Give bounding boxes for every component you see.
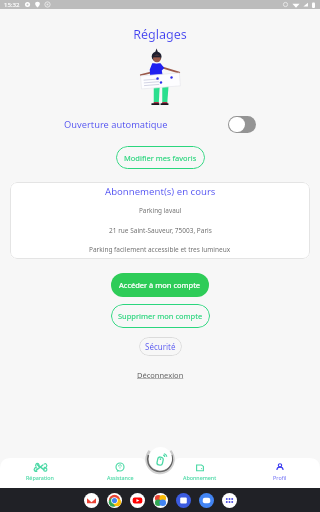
button[interactable]: Déconnexion [135, 368, 186, 382]
button[interactable]: Ouvrir la telecommande [149, 447, 172, 470]
button[interactable]: Accéder à mon compte [111, 273, 209, 297]
button[interactable]: Supprimer mon compte [111, 304, 210, 328]
button[interactable]: Profil [240, 457, 320, 487]
staticText: Abonnement [183, 474, 217, 481]
staticText: Accéder à mon compte [119, 280, 201, 290]
button[interactable]: Sécurité [139, 337, 182, 356]
button[interactable]: App 4 [176, 493, 191, 508]
button[interactable]: Réparation [0, 457, 80, 487]
staticText: Assistance [107, 474, 134, 481]
staticText: Parking lavaul [139, 206, 182, 215]
button[interactable]: App 0 [84, 493, 99, 508]
staticText: Profil [273, 474, 287, 481]
staticText: 21 rue Saint-Sauveur, 75003, Paris [109, 226, 212, 235]
staticText: Réparation [26, 474, 54, 481]
button[interactable]: Assistance [80, 457, 160, 487]
staticText: 15:32 [4, 1, 20, 9]
staticText: Modifier mes favoris [124, 153, 197, 163]
staticText: Sécurité [145, 341, 176, 352]
button[interactable]: App 6 [222, 493, 237, 508]
button[interactable]: App 3 [153, 493, 168, 508]
button[interactable]: App 2 [130, 493, 145, 508]
staticText: Parking facilement accessible et tres lu… [89, 245, 231, 254]
button[interactable]: App 5 [199, 493, 214, 508]
staticText: Supprimer mon compte [118, 311, 203, 321]
button[interactable]: Abonnement [160, 457, 240, 487]
staticText: Réglages [0, 26, 320, 43]
button[interactable]: App 1 [107, 493, 122, 508]
staticText: Déconnexion [137, 370, 184, 380]
staticText: Abonnement(s) en cours [105, 185, 216, 198]
button[interactable]: Ouverture automatique [228, 116, 256, 133]
button[interactable]: Modifier mes favoris [116, 146, 205, 169]
staticText: Ouverture automatique [64, 118, 168, 131]
